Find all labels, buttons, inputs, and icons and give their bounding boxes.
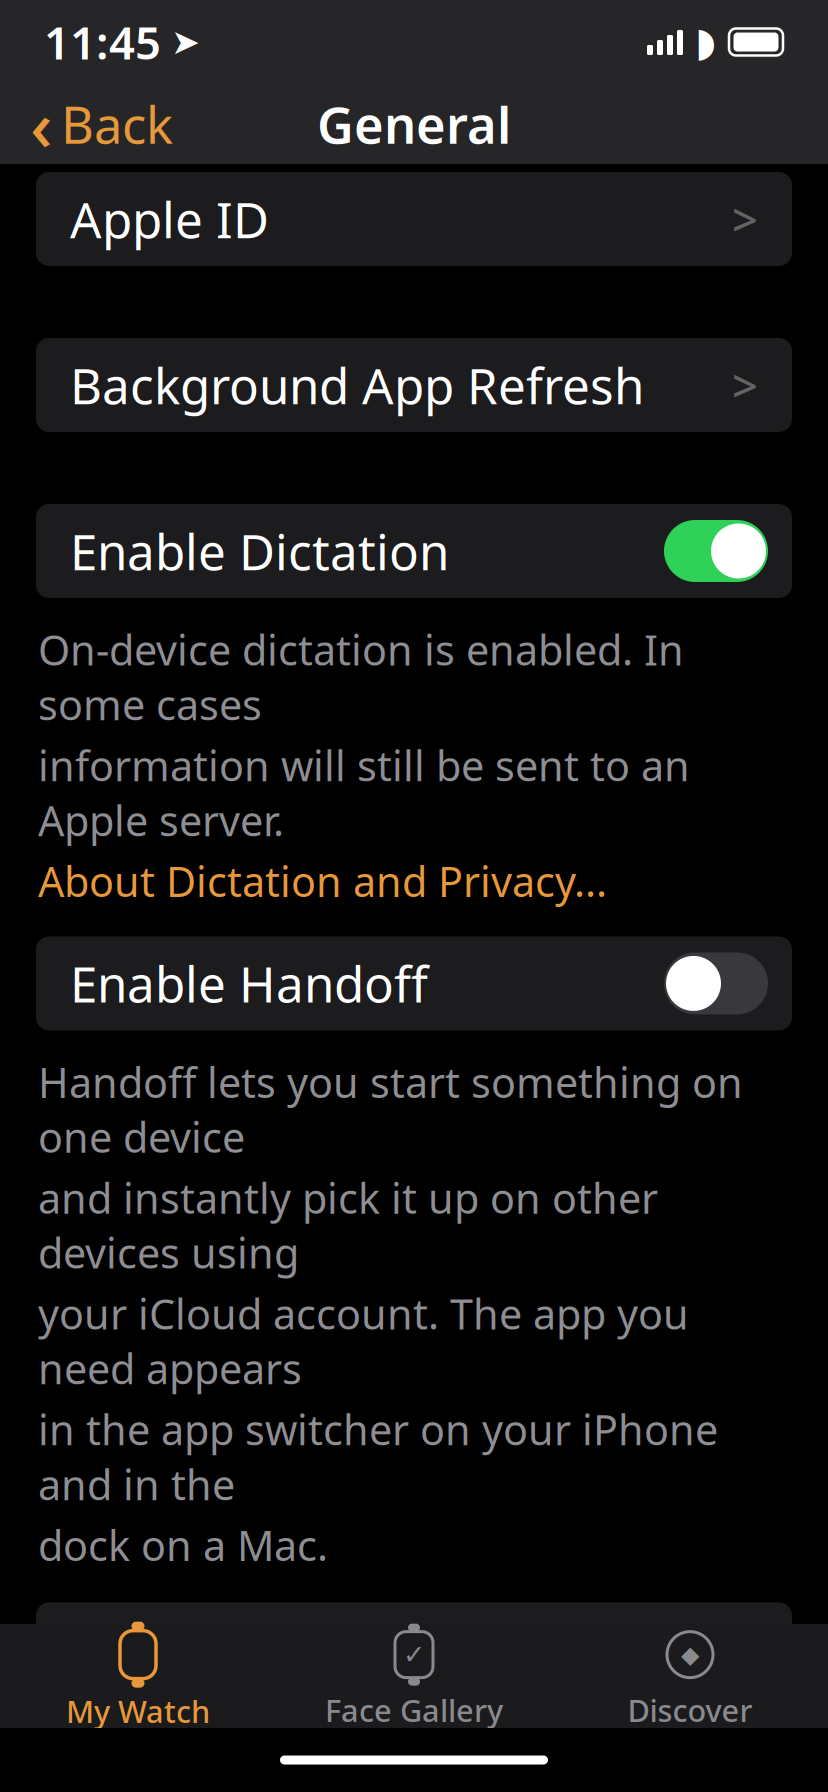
staticText: and instantly pick it up on other device… [38, 1170, 658, 1280]
staticText: My Watch [66, 1691, 210, 1731]
staticText: ✓ [403, 1639, 425, 1670]
staticText: General [317, 90, 511, 158]
button[interactable]: My Watch [0, 1624, 276, 1728]
staticText: Enable Dictation [70, 518, 449, 584]
staticText: Background App Refresh [70, 352, 644, 418]
staticText: your iCloud account. The app you need ap… [38, 1286, 689, 1396]
button[interactable]: About Dictation and Privacy... [38, 854, 607, 908]
staticText: About Dictation and Privacy... [38, 854, 607, 908]
staticText: Handoff lets you start something on one … [38, 1054, 743, 1164]
button[interactable]: Enable Dictation [36, 504, 792, 598]
staticText: ◗ [695, 19, 716, 65]
staticText: Return to Clock [70, 1617, 425, 1682]
staticText: Discover [627, 1690, 752, 1730]
staticText: information will still be sent to an App… [38, 738, 690, 848]
staticText: ➤ [171, 22, 200, 62]
staticText: 11:45 [44, 12, 161, 72]
staticText: ◆ [681, 1641, 699, 1668]
button[interactable]: ✓ [276, 1624, 552, 1728]
button[interactable]: ‹ [22, 89, 181, 159]
button[interactable]: Return to Clock [36, 1602, 792, 1696]
staticText: dock on a Mac. [38, 1517, 328, 1572]
staticText: in the app switcher on your iPhone and i… [38, 1402, 718, 1512]
staticText: Back [61, 90, 173, 158]
staticText: > [732, 189, 758, 249]
staticText: Apple ID [70, 186, 269, 252]
button[interactable]: Enable Handoff [36, 936, 792, 1030]
staticText: On-device dictation is enabled. In some … [38, 622, 684, 732]
staticText: > [732, 355, 758, 415]
staticText: ‹ [30, 78, 53, 170]
button[interactable]: Apple ID [36, 172, 792, 266]
button[interactable]: ◆ [552, 1624, 828, 1728]
staticText: Face Gallery [325, 1690, 503, 1730]
button[interactable]: Background App Refresh [36, 338, 792, 432]
staticText: Enable Handoff [70, 951, 428, 1016]
